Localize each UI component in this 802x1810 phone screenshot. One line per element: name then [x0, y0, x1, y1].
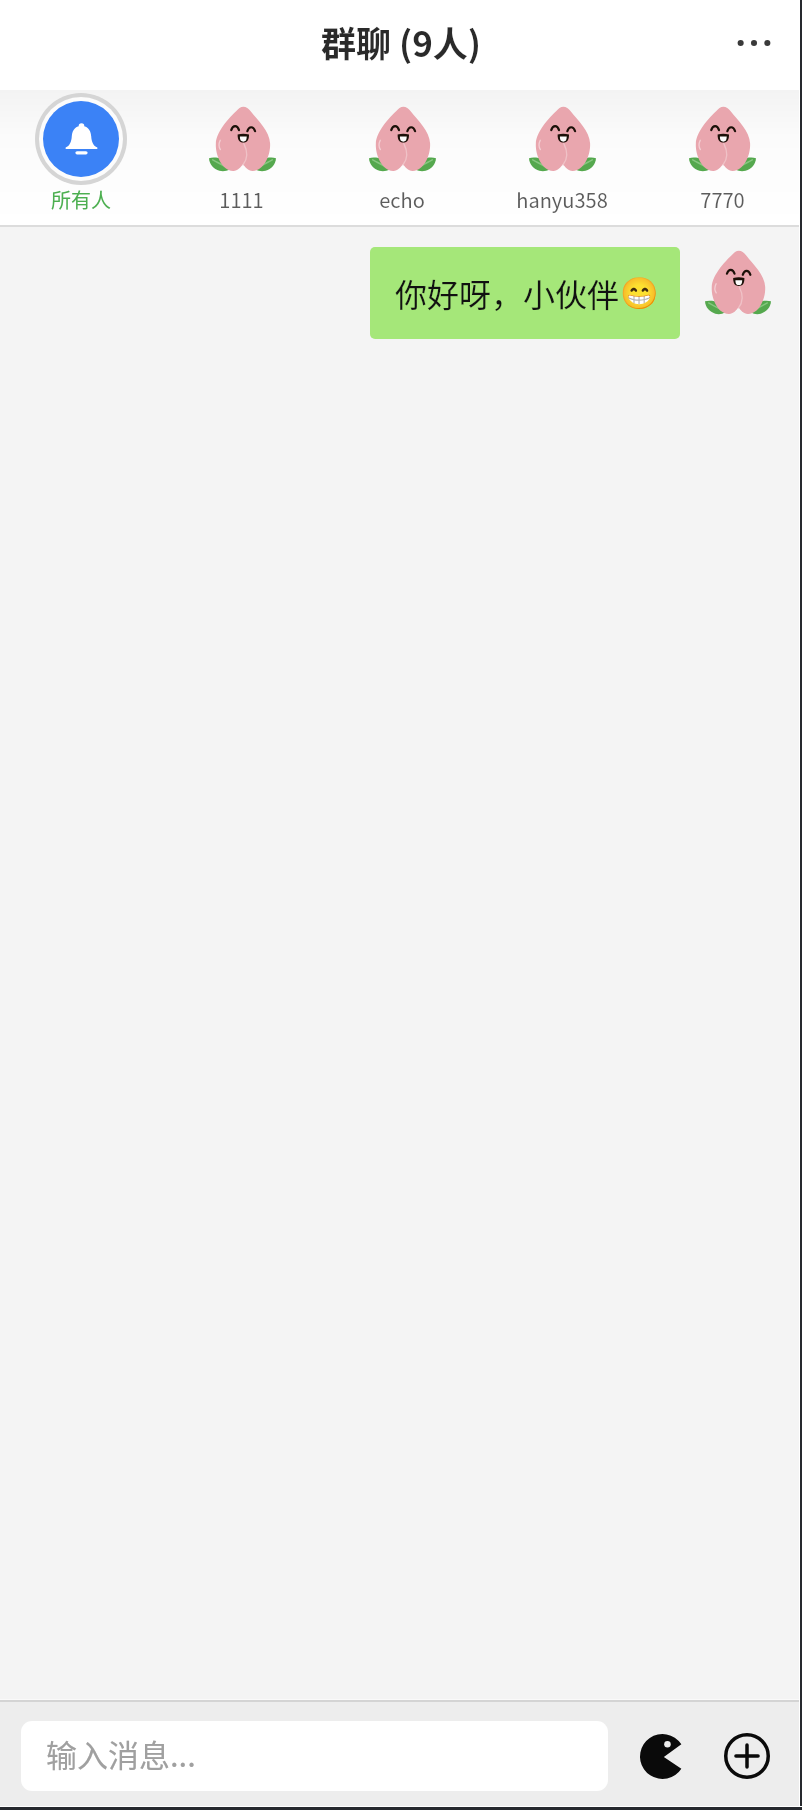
staticText: hanyu358 — [516, 185, 608, 214]
button[interactable]: 7770 — [642, 90, 802, 225]
button[interactable]: More options — [722, 13, 786, 77]
button[interactable]: 输入消息... — [21, 1721, 608, 1791]
staticText: 😁 — [620, 275, 659, 311]
button[interactable]: 1111 — [161, 90, 322, 225]
staticText: 1111 — [219, 185, 264, 214]
staticText: 你好呀，小伙伴 — [395, 270, 620, 316]
staticText: 所有人 — [51, 185, 111, 214]
staticText: 7770 — [700, 185, 745, 214]
staticText: 群聊 (9人) — [321, 16, 482, 67]
staticText: echo — [379, 185, 425, 214]
button[interactable]: Emoji — [632, 1726, 692, 1786]
button[interactable]: 所有人 — [0, 90, 161, 225]
button[interactable]: hanyu358 — [482, 90, 642, 225]
button[interactable]: Add — [717, 1726, 777, 1786]
button[interactable]: echo — [322, 90, 482, 225]
button[interactable]: 你好呀，小伙伴 — [370, 247, 680, 339]
staticText: 输入消息... — [46, 1731, 196, 1776]
